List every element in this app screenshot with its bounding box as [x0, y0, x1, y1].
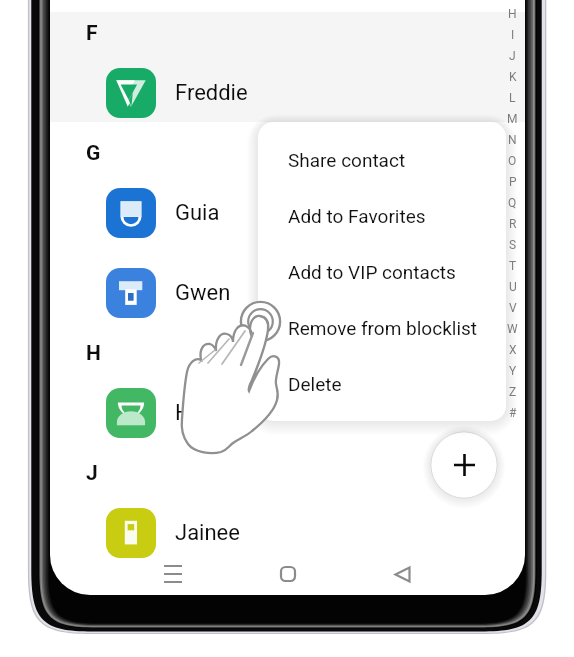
button[interactable]: Hanna	[50, 373, 525, 453]
staticText: R	[509, 217, 517, 231]
button[interactable]: Recents	[151, 552, 195, 595]
staticText: G	[86, 141, 101, 166]
button[interactable]: Guia	[50, 173, 525, 253]
staticText: P	[509, 175, 517, 189]
staticText: Gwen	[175, 280, 231, 306]
button[interactable]: Jainee	[50, 493, 525, 573]
staticText: Freddie	[175, 80, 248, 106]
staticText: Hanna	[175, 400, 239, 426]
staticText: J	[509, 49, 516, 63]
staticText: N	[508, 133, 517, 147]
staticText: Add to Favorites	[288, 205, 426, 227]
button[interactable]: Remove from blocklist	[258, 300, 506, 356]
staticText: K	[509, 70, 517, 84]
staticText: M	[507, 112, 518, 126]
staticText: Guia	[175, 200, 220, 226]
staticText: V	[509, 301, 517, 315]
staticText: Remove from blocklist	[288, 317, 478, 339]
button[interactable]: Gwen	[50, 253, 525, 333]
staticText: W	[507, 322, 518, 336]
button[interactable]: Add to Favorites	[258, 188, 506, 244]
staticText: I	[511, 28, 515, 42]
button[interactable]: Add to VIP contacts	[258, 244, 506, 300]
staticText: T	[509, 259, 517, 273]
staticText: Jainee	[175, 520, 240, 546]
button[interactable]: Delete	[258, 356, 506, 412]
staticText: J	[86, 461, 98, 486]
staticText: L	[509, 91, 516, 105]
staticText: H	[508, 7, 517, 21]
staticText: Delete	[288, 373, 342, 395]
button[interactable]: Home	[266, 552, 310, 595]
staticText: Q	[508, 196, 517, 210]
button[interactable]: Share contact	[258, 132, 506, 188]
staticText: U	[509, 280, 517, 294]
button[interactable]: Freddie	[50, 53, 525, 133]
staticText: Share contact	[288, 149, 406, 171]
staticText: #	[509, 406, 517, 420]
button[interactable]: Back	[380, 552, 424, 595]
staticText: O	[508, 154, 517, 168]
staticText: Add to VIP contacts	[288, 261, 456, 283]
staticText: Y	[509, 364, 517, 378]
staticText: Z	[509, 385, 517, 399]
button[interactable]: Add contact	[431, 432, 497, 498]
staticText: S	[509, 238, 517, 252]
staticText: F	[86, 21, 98, 46]
staticText: X	[509, 343, 517, 357]
staticText: H	[86, 341, 101, 366]
